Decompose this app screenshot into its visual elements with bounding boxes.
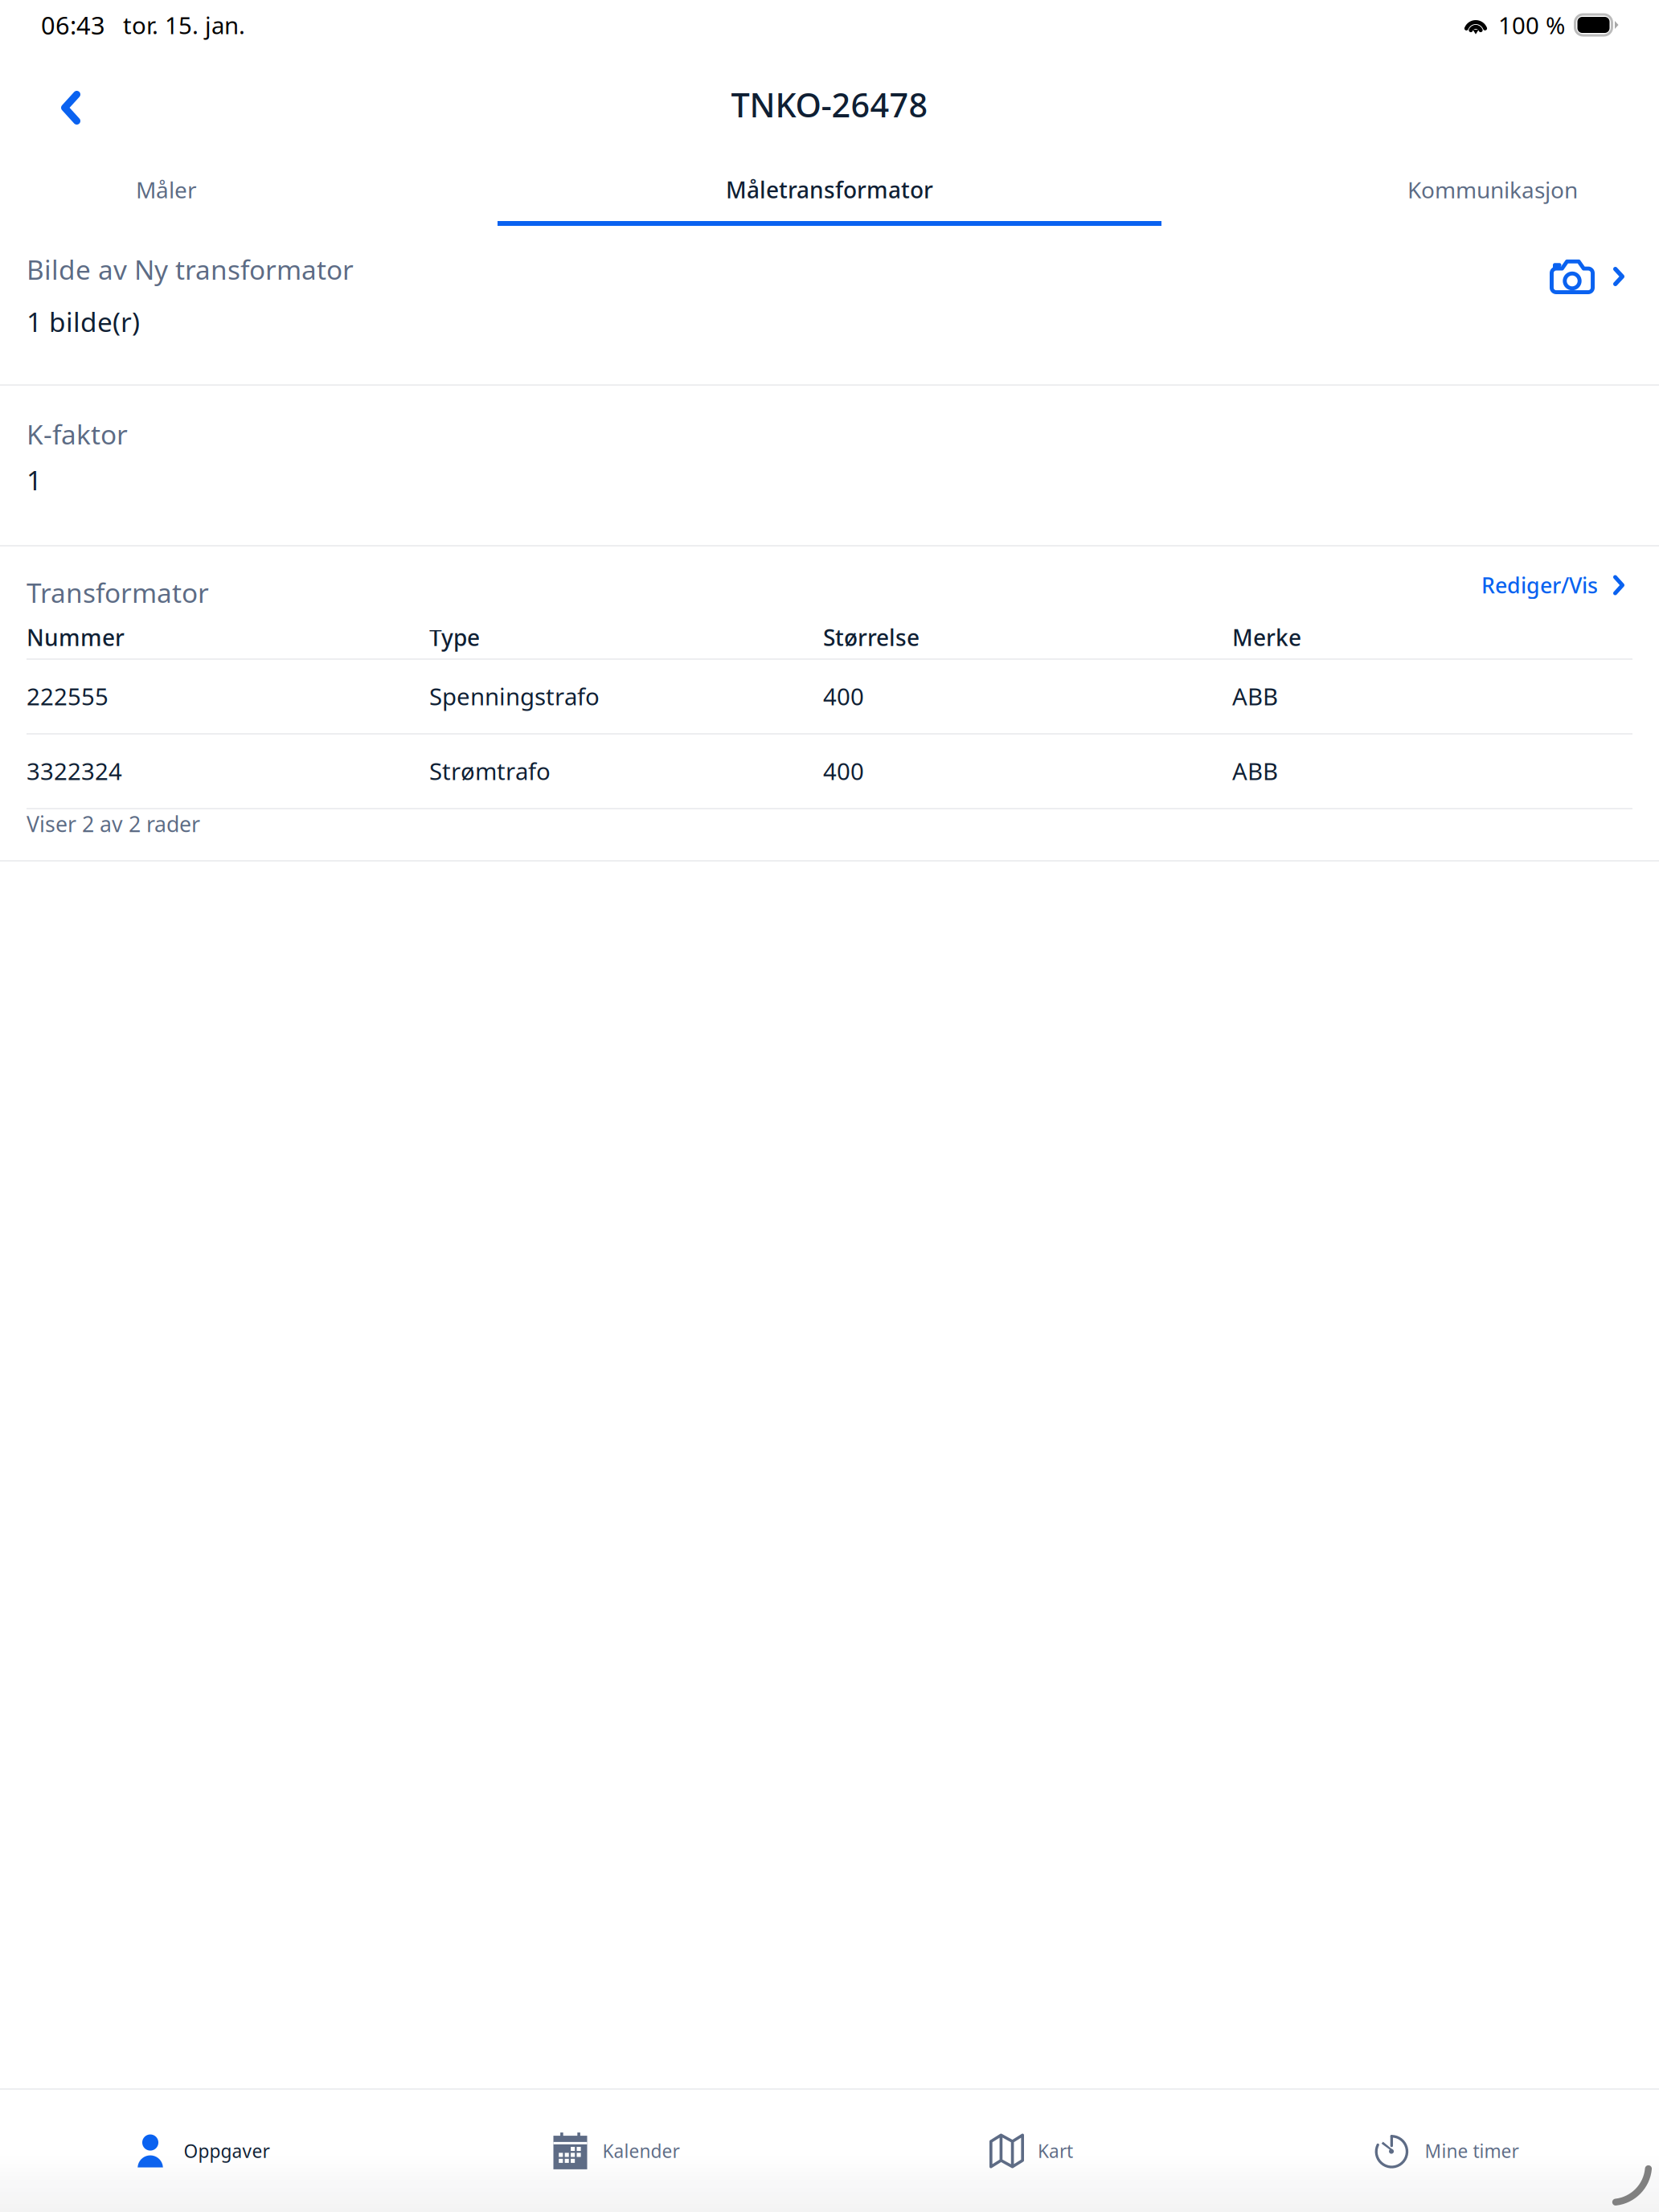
button[interactable]: Bilde av Ny transformator xyxy=(0,226,1659,384)
button[interactable]: Mine timer xyxy=(1239,2090,1653,2212)
staticText: Oppgaver xyxy=(184,2139,270,2163)
button[interactable]: Kommunikasjon xyxy=(1161,164,1659,215)
staticText: 100 % xyxy=(1498,9,1565,41)
staticText: ABB xyxy=(1232,680,1278,712)
staticText: 3322324 xyxy=(27,755,122,786)
staticText: K-faktor xyxy=(27,416,128,452)
button[interactable]: Kalender xyxy=(409,2090,824,2212)
button[interactable]: Back xyxy=(29,74,113,141)
staticText: Spenningstrafo xyxy=(429,680,600,712)
staticText: Strømtrafo xyxy=(429,755,551,786)
staticText: Rediger/Vis xyxy=(1481,571,1598,599)
staticText: 400 xyxy=(823,755,864,786)
staticText: ABB xyxy=(1232,755,1278,786)
staticText: Kalender xyxy=(602,2139,680,2163)
staticText: Måler xyxy=(136,175,197,205)
button[interactable]: Rediger/Vis xyxy=(1481,571,1624,599)
staticText: 1 xyxy=(27,462,42,498)
staticText: Nummer xyxy=(27,622,125,652)
button[interactable]: Måletransformator xyxy=(498,164,1161,215)
staticText: 1 bilde(r) xyxy=(27,304,140,339)
staticText: Merke xyxy=(1232,622,1301,652)
staticText: tor. 15. jan. xyxy=(123,9,245,41)
staticText: Kommunikasjon xyxy=(1407,175,1578,205)
staticText: Kart xyxy=(1038,2139,1073,2163)
staticText: TNKO-26478 xyxy=(731,82,928,127)
staticText: Måletransformator xyxy=(726,175,933,205)
staticText: Bilde av Ny transformator xyxy=(27,252,354,287)
staticText: Transformator xyxy=(27,575,209,610)
staticText: Mine timer xyxy=(1425,2139,1519,2163)
staticText: 400 xyxy=(823,680,864,712)
button[interactable]: Kart xyxy=(824,2090,1239,2212)
staticText: Viser 2 av 2 rader xyxy=(27,810,200,838)
staticText: 06:43 xyxy=(41,9,105,41)
staticText: Type xyxy=(429,622,480,652)
staticText: 222555 xyxy=(27,680,109,712)
button[interactable]: Oppgaver xyxy=(0,2090,409,2212)
button[interactable]: Måler xyxy=(0,164,498,215)
staticText: Størrelse xyxy=(823,622,920,652)
